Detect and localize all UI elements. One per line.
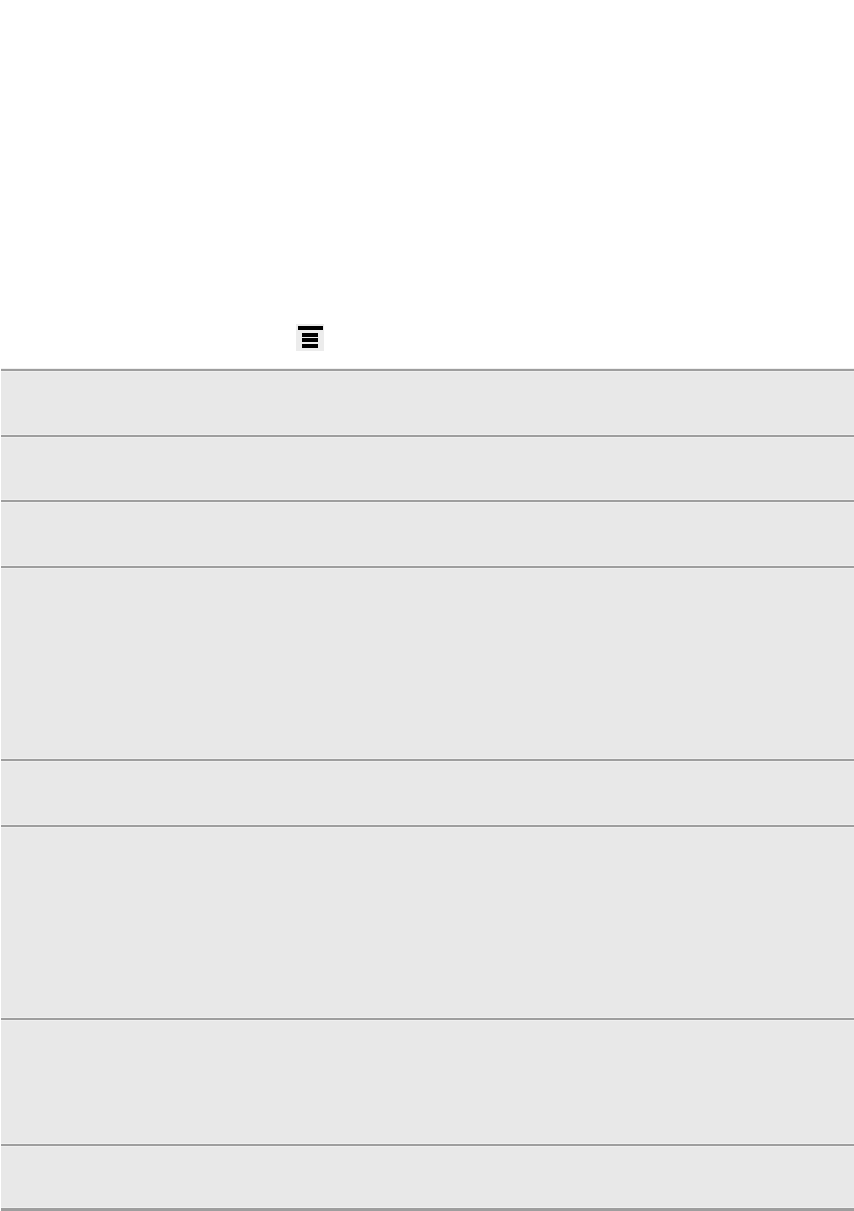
button[interactable] — [1, 1144, 854, 1208]
button[interactable] — [1, 1018, 854, 1144]
button[interactable] — [1, 566, 854, 759]
button[interactable] — [1, 435, 854, 500]
button[interactable] — [1, 500, 854, 566]
button[interactable] — [1, 369, 854, 435]
button[interactable]: List — [296, 324, 324, 351]
button[interactable] — [1, 825, 854, 1018]
button[interactable] — [1, 759, 854, 825]
